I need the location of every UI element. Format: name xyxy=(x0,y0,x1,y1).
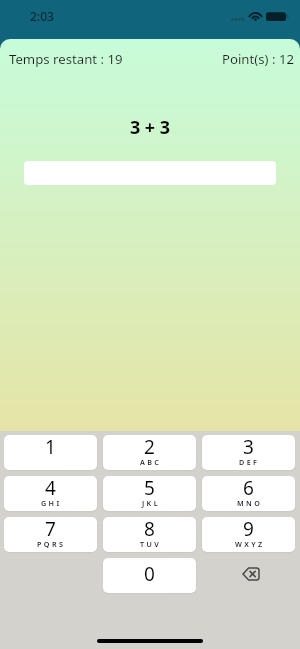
staticText: 8 xyxy=(144,517,155,542)
staticText: MNO xyxy=(237,498,263,508)
button[interactable]: 8 xyxy=(103,517,196,552)
staticText: 0 xyxy=(144,561,155,587)
button[interactable]: Delete xyxy=(202,558,295,593)
staticText: 5 xyxy=(144,476,155,501)
button[interactable]: 2 xyxy=(103,435,196,470)
staticText: 2 xyxy=(144,435,155,460)
staticText: GHI xyxy=(41,498,62,508)
staticText: PQRS xyxy=(37,539,66,549)
button[interactable]: 0 xyxy=(103,558,196,593)
button[interactable]: 1 xyxy=(4,435,97,470)
staticText: JKL xyxy=(142,498,160,508)
staticText: DEF xyxy=(239,457,260,467)
button[interactable]: 6 xyxy=(202,476,295,511)
button[interactable]: 7 xyxy=(4,517,97,552)
button[interactable]: 5 xyxy=(103,476,196,511)
button[interactable]: 4 xyxy=(4,476,97,511)
staticText: 9 xyxy=(243,517,254,542)
staticText: TUV xyxy=(140,539,162,549)
button[interactable]: 3 xyxy=(202,435,295,470)
staticText: WXYZ xyxy=(235,539,265,549)
staticText: 2:03 xyxy=(30,8,54,24)
staticText: 3 xyxy=(243,435,254,460)
staticText: 3 + 3 xyxy=(0,115,300,140)
staticText: 1 xyxy=(45,435,56,460)
staticText: Point(s) : 12 xyxy=(222,50,294,68)
button[interactable]: 9 xyxy=(202,517,295,552)
staticText: 6 xyxy=(243,476,254,501)
staticText: ABC xyxy=(140,457,162,467)
staticText: Temps restant : 19 xyxy=(9,50,123,68)
staticText: 7 xyxy=(45,517,56,542)
staticText: 4 xyxy=(45,476,56,501)
